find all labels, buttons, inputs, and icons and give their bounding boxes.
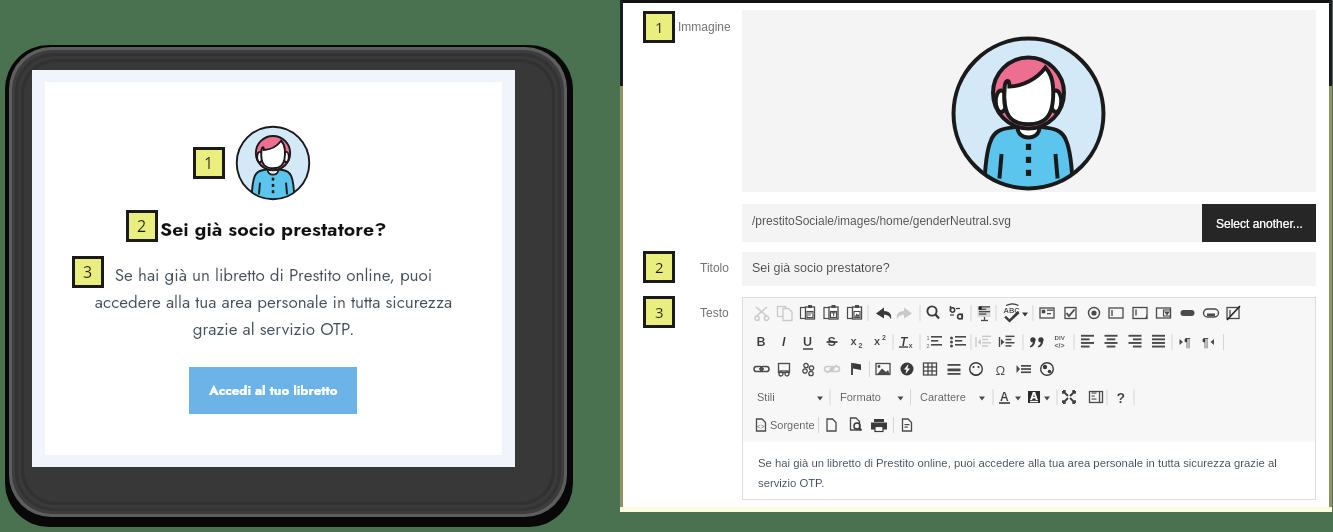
button[interactable]: Accedi al tuo libretto [189,367,357,414]
staticText: /prestitoSociale/images/home/genderNeutr… [752,214,1011,227]
other: Callout 1 [646,14,672,40]
staticText: Sei già socio prestatore? [160,215,387,243]
button[interactable]: Select another... [1202,204,1316,242]
staticText: Accedi al tuo libretto [209,381,338,400]
other: Callout 1 [196,150,222,176]
other: Callout 3 [75,259,101,285]
staticText: 1 [204,152,214,174]
staticText: Se hai già un libretto di Prestito onlin… [758,457,1286,489]
other: Callout 2 [129,213,155,239]
staticText: Sei già socio prestatore? [752,261,890,275]
staticText: Titolo [700,261,729,274]
other: Callout 3 [646,299,672,325]
staticText: Immagine [678,20,731,33]
staticText: Testo [700,306,729,319]
staticText: Select another... [1216,217,1303,230]
staticText: 2 [655,257,664,277]
staticText: Se hai già un libretto di Prestito onlin… [86,263,461,341]
staticText: 2 [137,215,147,237]
staticText: 3 [655,302,664,322]
staticText: 1 [655,17,664,37]
staticText: 3 [83,261,93,283]
other: Callout 2 [646,254,672,280]
